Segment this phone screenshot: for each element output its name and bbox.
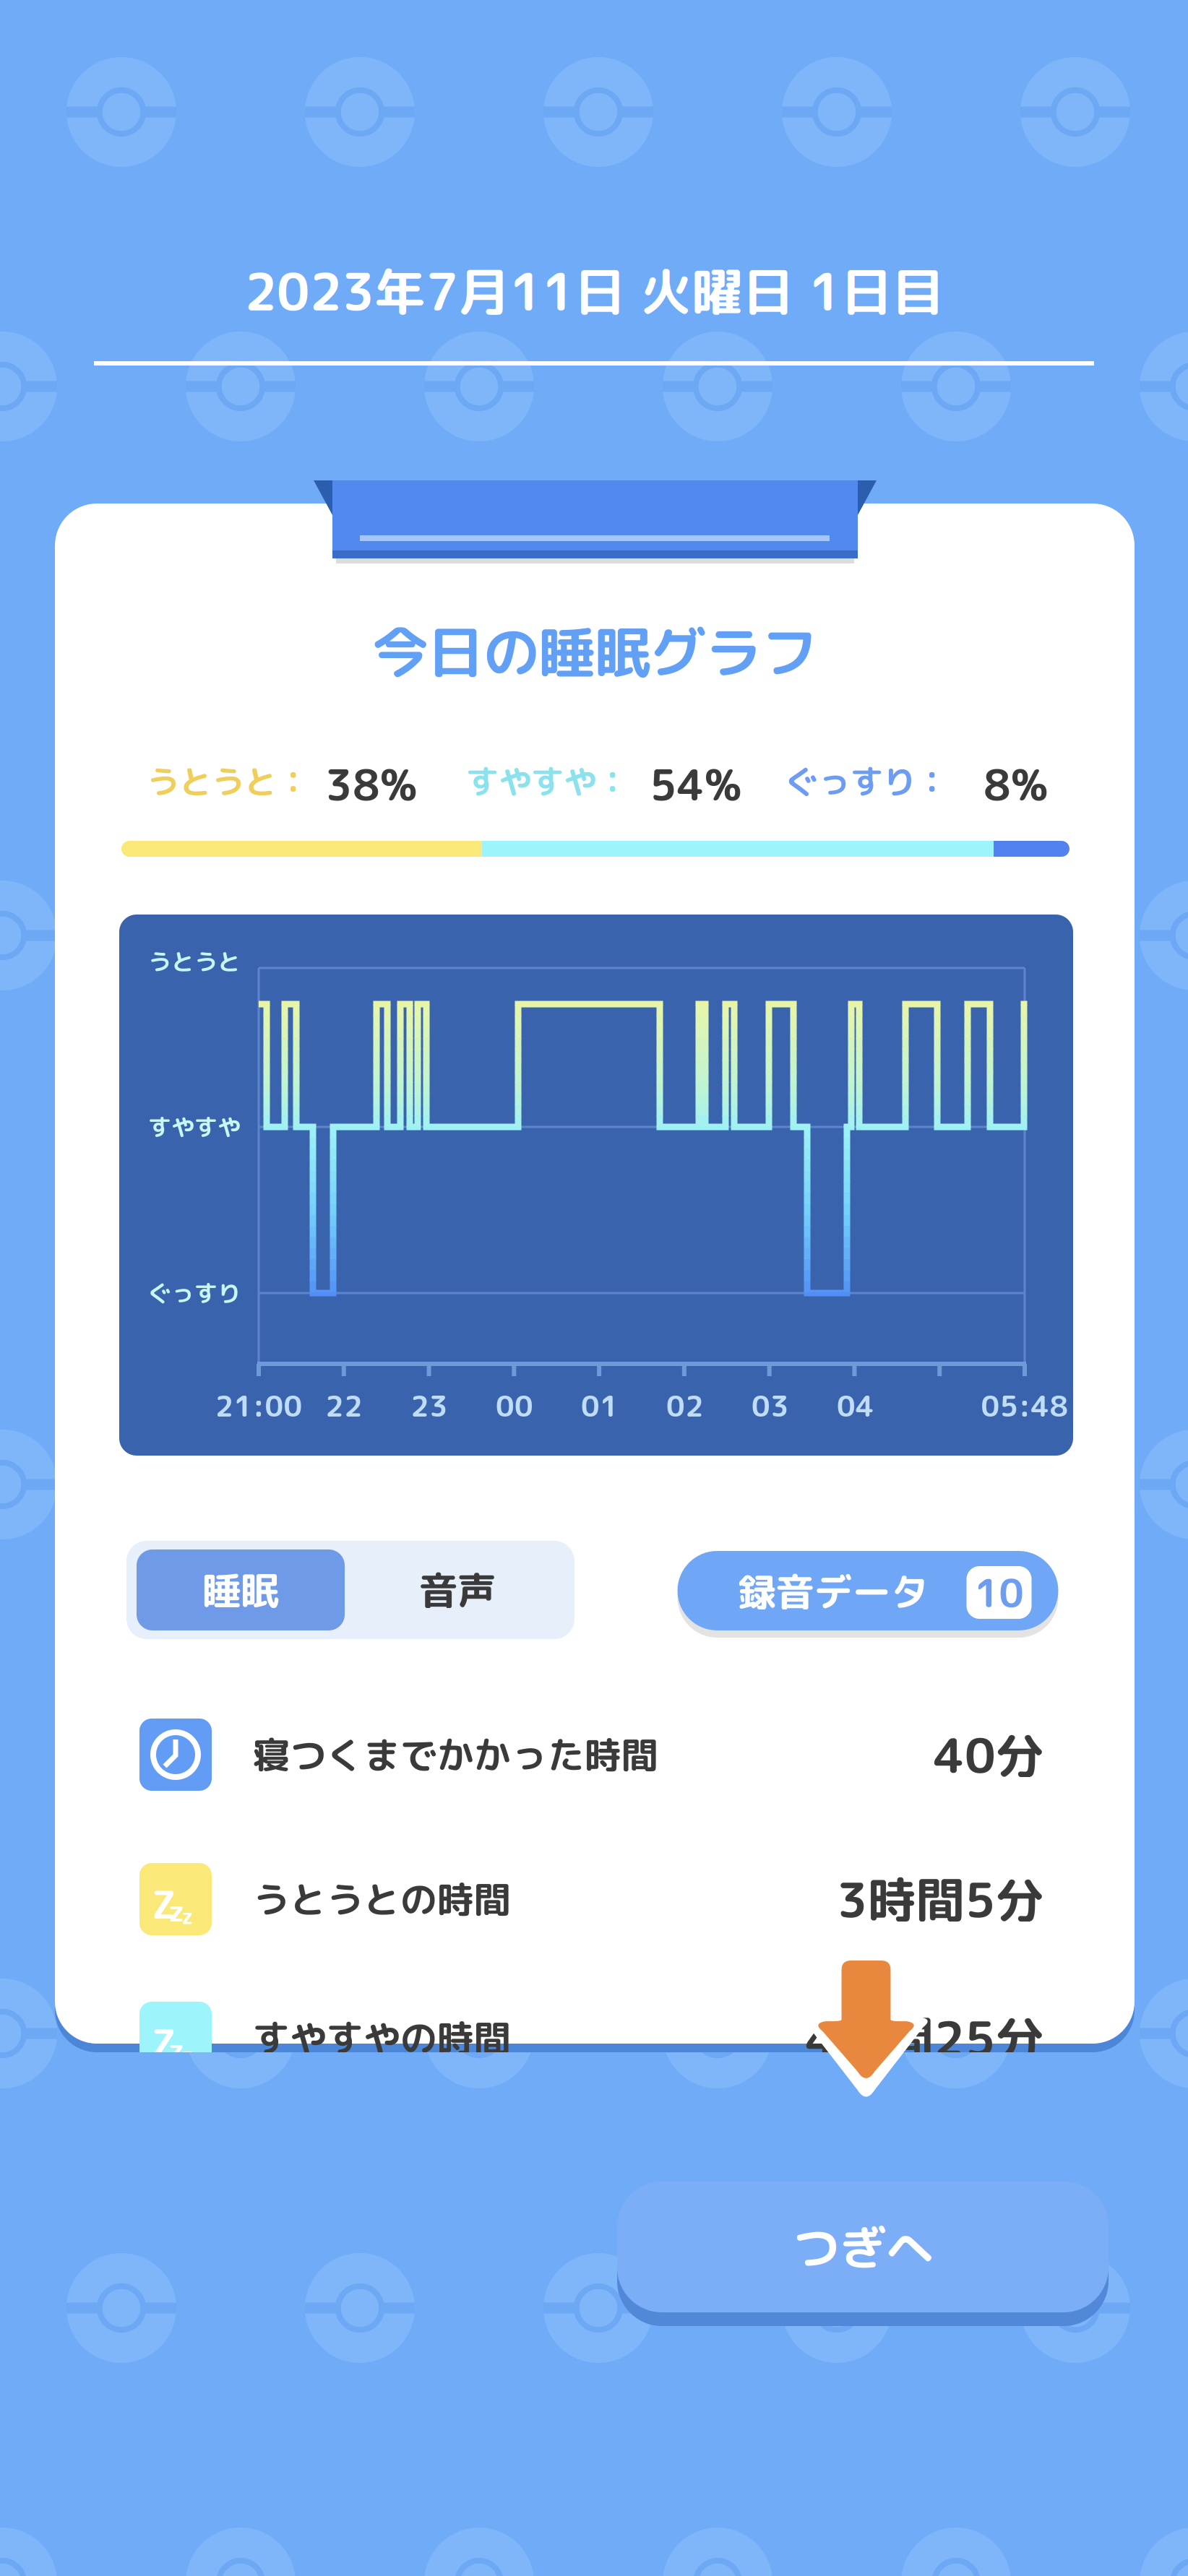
staticText: z [181, 1901, 193, 1931]
staticText: すやすや： [466, 758, 629, 804]
staticText: z [168, 1890, 184, 1931]
staticText: 3時間5分 [837, 1866, 1044, 1933]
staticText: つぎへ [792, 2214, 933, 2280]
staticText: うとうとの時間 [253, 1874, 511, 1925]
staticText: うとうと [148, 945, 241, 978]
staticText: 音声 [419, 1563, 496, 1617]
staticText: 2023年7月11日 火曜日 1日目 [244, 256, 944, 327]
staticText: 05:48 [981, 1386, 1068, 1426]
staticText: 02 [666, 1386, 704, 1426]
staticText: 03 [752, 1386, 789, 1426]
staticText: 録音データ [737, 1565, 929, 1618]
staticText: すやすや [148, 1111, 241, 1143]
button[interactable]: 録音データ [678, 1547, 1058, 1636]
staticText: 23 [410, 1386, 448, 1426]
staticText: 今日の睡眠グラフ [372, 613, 817, 691]
button[interactable]: つぎへ [617, 2182, 1109, 2326]
staticText: Z [152, 1877, 176, 1931]
staticText: 00 [496, 1386, 533, 1426]
staticText: 睡眠 [202, 1563, 279, 1617]
staticText: ぐっすり [148, 1277, 241, 1309]
staticText: 4時間25分 [806, 2004, 1044, 2071]
staticText: 寝つくまでかかった時間 [253, 1729, 658, 1780]
staticText: Z [152, 2016, 176, 2070]
staticText: 22 [325, 1386, 363, 1426]
staticText: 54% [650, 755, 741, 814]
button[interactable]: 睡眠 [126, 1541, 574, 1639]
staticText: 38% [325, 755, 417, 814]
staticText: 21:00 [215, 1386, 302, 1426]
staticText: z [168, 2029, 184, 2069]
staticText: ぐっすり： [785, 758, 948, 804]
staticText: うとうと： [147, 758, 309, 804]
staticText: 8% [983, 755, 1048, 814]
staticText: すやすやの時間 [253, 2012, 511, 2063]
staticText: 01 [581, 1386, 619, 1426]
staticText: 40分 [934, 1721, 1044, 1788]
staticText: 10 [974, 1566, 1024, 1619]
staticText: z [181, 2040, 193, 2070]
staticText: 04 [837, 1386, 874, 1426]
